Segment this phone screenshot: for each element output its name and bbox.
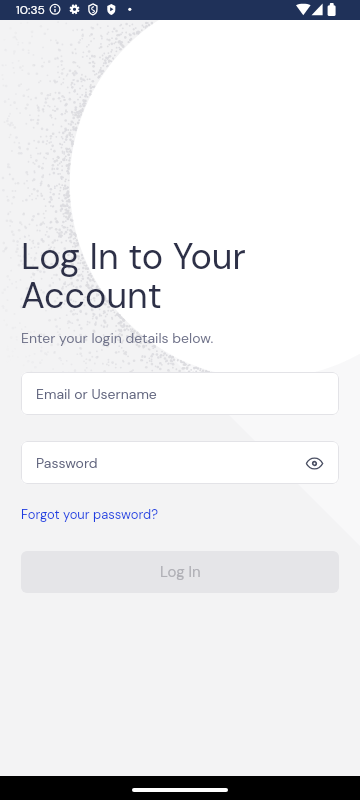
staticText: Email or Username [36,385,157,403]
button[interactable]: Password [21,441,339,484]
button[interactable]: Show password [303,452,325,474]
staticText: 10:35 [16,2,45,18]
staticText: Log In to Your Account [21,233,246,319]
staticText: Enter your login details below. [21,329,214,347]
staticText: Password [36,454,98,472]
button[interactable]: Log In [21,551,339,593]
button[interactable]: Forgot your password? [21,504,159,525]
staticText: Log In [160,562,201,582]
button[interactable]: Email or Username [21,372,339,415]
